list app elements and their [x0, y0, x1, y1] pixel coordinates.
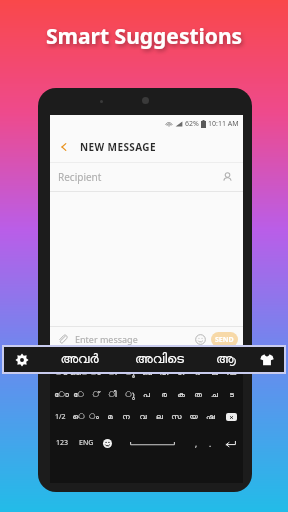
staticText: Recipient [58, 170, 102, 184]
staticText: പ [143, 391, 150, 399]
button[interactable]: ൗ [53, 366, 70, 379]
staticText: ദ [195, 369, 200, 377]
staticText: സ [171, 413, 182, 421]
button[interactable]: ഹ [155, 366, 172, 379]
staticText: ൗ [55, 369, 68, 377]
button[interactable]: ു [121, 388, 138, 401]
button[interactable]: ് [87, 388, 104, 401]
staticText: ENG [79, 438, 94, 448]
staticText: Smart Suggestions [46, 22, 243, 51]
staticText: ര [161, 391, 167, 399]
staticText: Enter message [75, 333, 138, 345]
button[interactable]: Enter [217, 434, 243, 452]
button[interactable]: േ [70, 388, 87, 401]
staticText: ൈ [70, 369, 87, 377]
staticText: ് [92, 391, 100, 399]
button[interactable]: ദ [189, 366, 206, 379]
button[interactable]: ട [223, 388, 240, 401]
button[interactable]: ക [172, 388, 189, 401]
staticText: ച [211, 391, 218, 399]
staticText: ഗ [177, 369, 185, 377]
staticText: NEW MESSAGE [80, 140, 157, 154]
staticText: വ [139, 413, 147, 421]
button[interactable]: Choose contact [219, 169, 235, 185]
staticText: ഷ [206, 413, 215, 421]
staticText: 62% [185, 119, 199, 129]
staticText: ഡ [226, 369, 237, 377]
button[interactable]: ല [151, 410, 168, 424]
staticText: ജ [211, 369, 218, 377]
button[interactable]: Recipient [50, 163, 243, 191]
button[interactable]: Backspace [219, 410, 243, 424]
button[interactable]: പ [138, 388, 155, 401]
button[interactable]: വ [134, 410, 151, 424]
staticText: ു [125, 391, 135, 399]
staticText: , [195, 438, 198, 449]
button[interactable]: Themes [250, 347, 284, 372]
staticText: ത [194, 391, 202, 399]
staticText: ല [156, 413, 163, 421]
staticText: അവിടെ [135, 353, 184, 366]
button[interactable]: SEND [211, 332, 238, 347]
button[interactable]: ENG [74, 434, 98, 452]
button[interactable]: മ [102, 410, 118, 424]
button[interactable]: െ [70, 410, 86, 424]
button[interactable]: Settings [4, 347, 40, 372]
staticText: ൂ [125, 369, 135, 377]
button[interactable]: ച [206, 388, 223, 401]
staticText: 1/2 [55, 412, 66, 422]
button[interactable]: . [203, 434, 217, 452]
staticText: ീ [108, 369, 117, 377]
staticText: ആ [216, 353, 236, 366]
button[interactable]: , [189, 434, 203, 452]
button[interactable]: Emoji keyboard [98, 434, 116, 452]
staticText: 123 [56, 438, 69, 448]
staticText: െ [72, 413, 85, 421]
button[interactable]: 123 [50, 434, 74, 452]
button[interactable]: ത [189, 388, 206, 401]
button[interactable]: ബ [138, 366, 155, 379]
staticText: ാ [90, 369, 101, 377]
button[interactable]: ഷ [202, 410, 219, 424]
staticText: ട [229, 391, 234, 399]
button[interactable]: ീ [104, 366, 121, 379]
button[interactable]: ി [104, 388, 121, 401]
staticText: േ [73, 391, 84, 399]
staticText: ോ [54, 391, 69, 399]
staticText: ി [108, 391, 117, 399]
staticText: യ [189, 413, 198, 421]
button[interactable]: Back [54, 137, 74, 157]
staticText: അവർ [60, 353, 99, 366]
button[interactable]: ാ [87, 366, 104, 379]
staticText: ബ [142, 369, 152, 377]
button[interactable]: അവർ [40, 347, 118, 372]
staticText: ം [89, 413, 99, 421]
button[interactable]: ന [118, 410, 134, 424]
button[interactable]: ജ [206, 366, 223, 379]
button[interactable]: 1/2 [50, 410, 70, 424]
button[interactable]: Space [116, 434, 189, 452]
button[interactable]: ൈ [70, 366, 87, 379]
staticText: മ [107, 413, 113, 421]
staticText: 10:11 AM [208, 119, 239, 129]
staticText: ക [177, 391, 185, 399]
button[interactable]: ൂ [121, 366, 138, 379]
button[interactable]: സ [168, 410, 185, 424]
button[interactable]: Emoji [193, 332, 208, 347]
button[interactable]: Attach [55, 331, 71, 347]
button[interactable]: ം [86, 410, 102, 424]
staticText: SEND [215, 335, 234, 345]
button[interactable]: ആ [201, 347, 250, 372]
staticText: ഹ [159, 369, 169, 377]
staticText: ന [122, 413, 130, 421]
button[interactable]: ഡ [223, 366, 240, 379]
button[interactable]: ഗ [172, 366, 189, 379]
button[interactable]: യ [185, 410, 202, 424]
button[interactable]: ോ [53, 388, 70, 401]
button[interactable]: ര [155, 388, 172, 401]
staticText: . [209, 438, 212, 449]
button[interactable]: അവിടെ [118, 347, 201, 372]
